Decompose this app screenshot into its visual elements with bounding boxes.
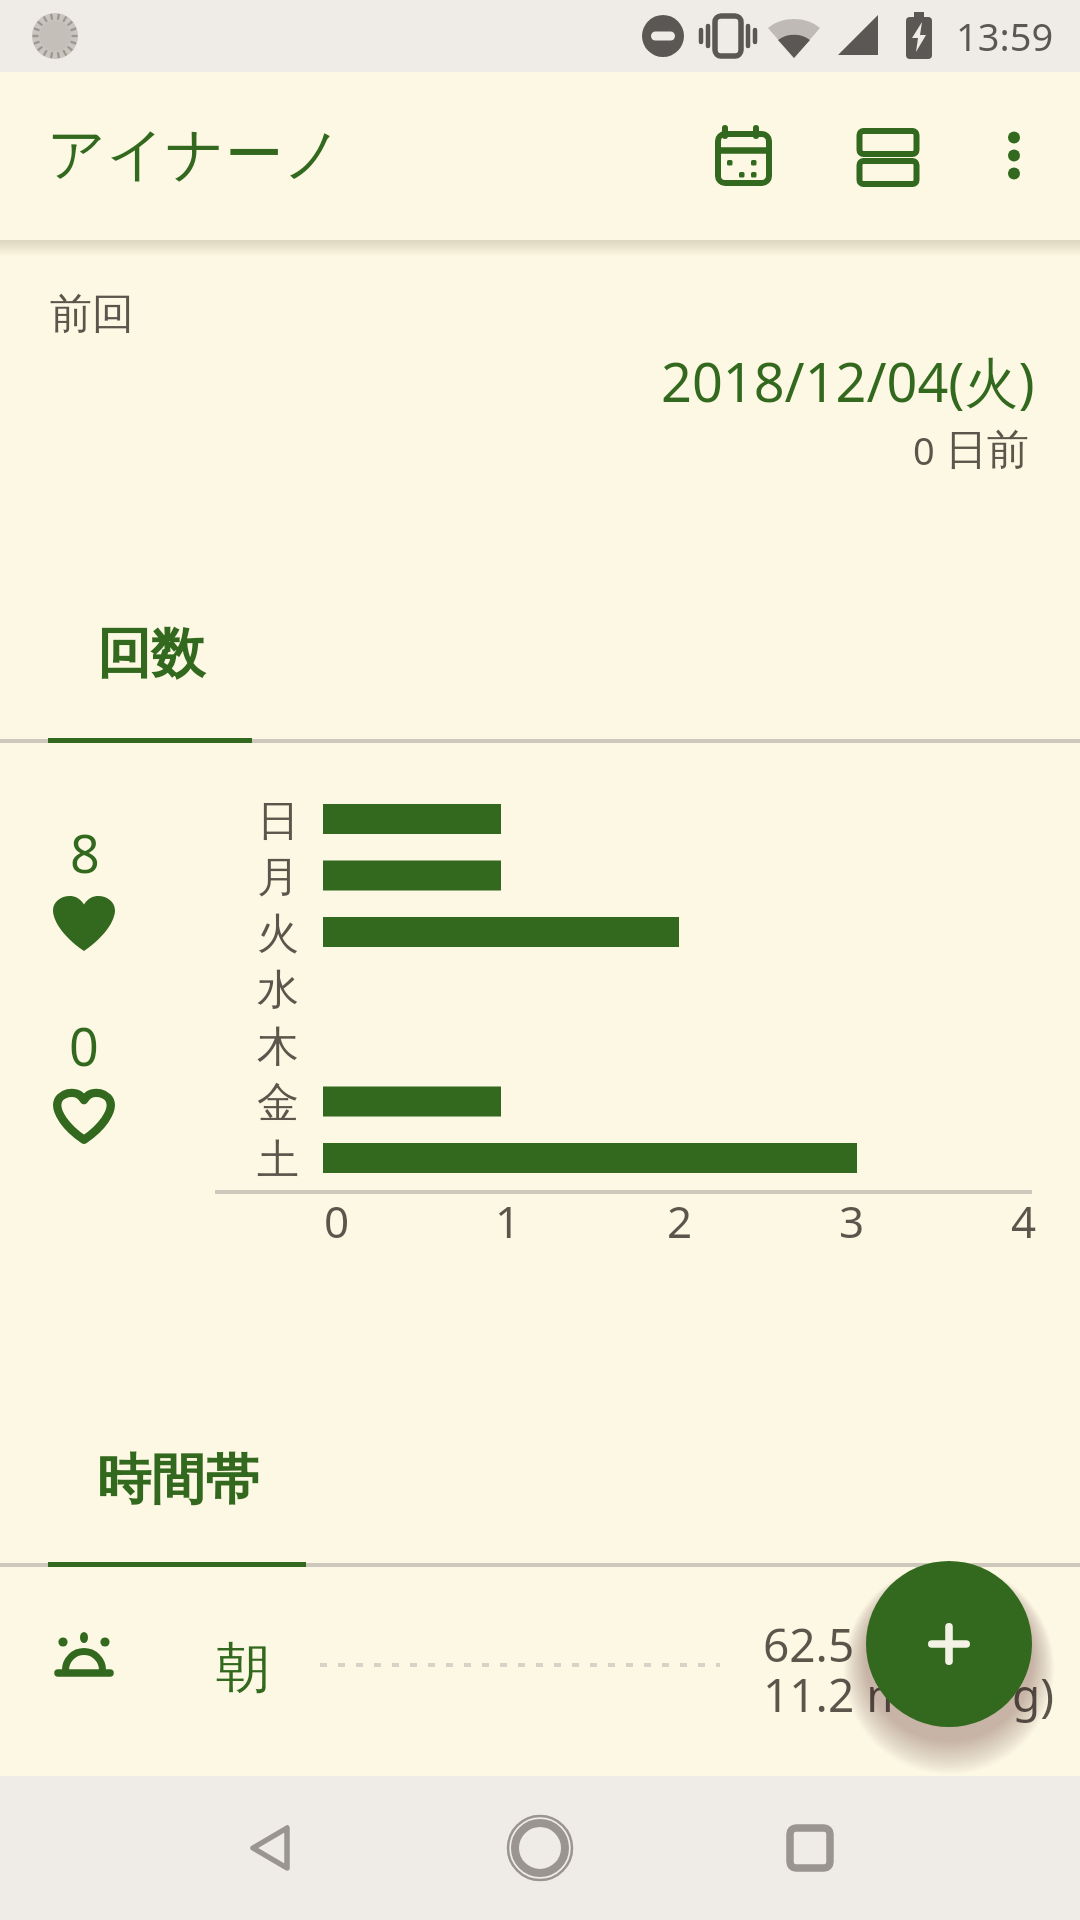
button[interactable]: 回数 (48, 594, 252, 745)
button[interactable]: 時間帯 (48, 1420, 306, 1569)
button[interactable] (0, 1569, 1080, 1759)
staticText: 時間帯 (97, 1446, 259, 1514)
staticText: 2018/12/04(火) (661, 344, 1035, 418)
staticText: 11.2 m (3.5 g) (763, 1663, 1054, 1726)
staticText: 土 (257, 1134, 299, 1187)
staticText: 3 (839, 1191, 865, 1251)
staticText: 火 (257, 908, 299, 961)
staticText: 水 (257, 964, 299, 1017)
staticText: 回数 (97, 620, 205, 688)
button[interactable]: Home (470, 1778, 610, 1918)
staticText: 8 (70, 817, 100, 888)
staticText: 2 (667, 1191, 693, 1251)
staticText: 0 (913, 424, 945, 476)
staticText: 前回 (50, 288, 134, 341)
button[interactable]: More options (954, 96, 1074, 216)
button[interactable]: Recent apps (740, 1778, 880, 1918)
staticText: 4 (1011, 1191, 1037, 1251)
staticText: 日 (257, 795, 299, 848)
staticText: 日前 (945, 424, 1029, 477)
staticText: 0 (324, 1191, 350, 1251)
staticText: 13:59 (956, 10, 1054, 62)
staticText: アイナーノ (47, 118, 343, 191)
staticText: 62.5 % (763, 1613, 905, 1676)
button[interactable]: Add (866, 1561, 1032, 1727)
staticText: 1 (495, 1191, 521, 1251)
button[interactable]: Calendar (685, 96, 805, 216)
staticText: 金 (257, 1077, 299, 1130)
staticText: 月 (257, 851, 299, 904)
button[interactable]: Change view (828, 96, 948, 216)
staticText: 木 (257, 1021, 299, 1074)
staticText: 0 (69, 1010, 99, 1081)
button[interactable]: Back (200, 1778, 340, 1918)
staticText: 朝 (216, 1634, 270, 1702)
